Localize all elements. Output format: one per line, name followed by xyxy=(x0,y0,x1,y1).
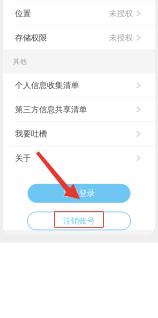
button[interactable]: 个人信息收集清单 xyxy=(3,74,155,97)
button[interactable]: 注销账号 xyxy=(27,212,130,230)
button[interactable]: 关于 xyxy=(3,146,155,170)
staticText: 个人信息收集清单 xyxy=(15,80,79,90)
button[interactable]: 存储权限 xyxy=(3,26,155,50)
staticText: 关于 xyxy=(15,153,31,163)
staticText: 未授权 xyxy=(109,33,133,43)
staticText: 我要吐槽 xyxy=(15,129,47,139)
staticText: 退出登录 xyxy=(63,188,95,198)
staticText: 位置 xyxy=(15,9,31,18)
button[interactable]: 位置 xyxy=(3,2,155,25)
button[interactable]: 我要吐槽 xyxy=(3,122,155,146)
button[interactable]: 第三方信息共享清单 xyxy=(3,98,155,121)
staticText: 存储权限 xyxy=(15,33,47,43)
staticText: 其他 xyxy=(13,57,27,66)
staticText: 未授权 xyxy=(109,9,133,18)
button[interactable]: 退出登录 xyxy=(27,184,130,203)
staticText: 注销账号 xyxy=(63,216,95,226)
staticText: 第三方信息共享清单 xyxy=(15,105,87,114)
